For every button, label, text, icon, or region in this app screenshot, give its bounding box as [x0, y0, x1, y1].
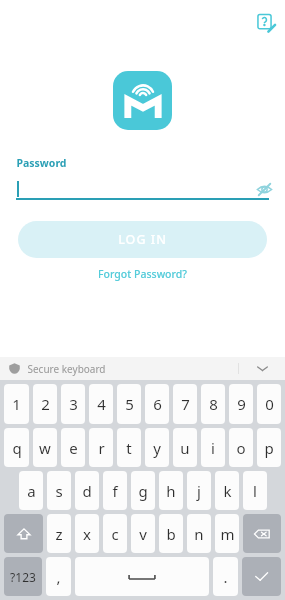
staticText: l	[253, 481, 257, 501]
staticText: LOG IN	[118, 231, 167, 248]
staticText: b	[166, 524, 176, 544]
staticText: 5	[125, 394, 134, 414]
staticText: k	[223, 481, 232, 501]
button[interactable]: .	[213, 557, 238, 596]
button[interactable]: Enter	[242, 557, 281, 596]
button[interactable]: Collapse keyboard	[239, 357, 285, 380]
button[interactable]: 0	[257, 384, 281, 424]
staticText: a	[27, 481, 36, 501]
button[interactable]: 5	[117, 384, 141, 424]
button[interactable]: Help	[253, 10, 279, 36]
staticText: t	[126, 438, 132, 458]
button[interactable]: j	[187, 471, 211, 510]
staticText: v	[139, 524, 147, 544]
button[interactable]: Secure keyboard	[0, 357, 285, 380]
button[interactable]: ,	[46, 557, 71, 596]
button[interactable]: Shift	[4, 514, 43, 553]
button[interactable]: LOG IN	[18, 221, 267, 258]
button[interactable]: t	[117, 428, 141, 467]
staticText: o	[236, 438, 246, 458]
button[interactable]: i	[201, 428, 225, 467]
staticText: 8	[209, 394, 218, 414]
button[interactable]: v	[131, 514, 155, 553]
staticText: .	[223, 567, 228, 587]
staticText: Password	[16, 156, 67, 170]
button[interactable]: 9	[229, 384, 253, 424]
staticText: 7	[181, 394, 190, 414]
button[interactable]: 8	[201, 384, 225, 424]
staticText: d	[82, 481, 92, 501]
staticText: e	[69, 438, 78, 458]
staticText: 9	[237, 394, 246, 414]
button[interactable]: x	[75, 514, 99, 553]
button[interactable]: 1	[4, 384, 29, 424]
button[interactable]: c	[103, 514, 127, 553]
button[interactable]: g	[131, 471, 155, 510]
staticText: Secure keyboard	[27, 362, 106, 376]
staticText: y	[153, 438, 161, 458]
button[interactable]: Show password	[253, 179, 275, 199]
button[interactable]: f	[103, 471, 127, 510]
button[interactable]: y	[145, 428, 169, 467]
staticText: z	[55, 524, 63, 544]
button[interactable]: q	[4, 428, 29, 467]
button[interactable]: w	[33, 428, 57, 467]
button[interactable]: k	[215, 471, 239, 510]
staticText: x	[83, 524, 91, 544]
staticText: m	[220, 524, 235, 544]
button[interactable]: 6	[145, 384, 169, 424]
staticText: 1	[12, 394, 21, 414]
staticText: p	[264, 438, 274, 458]
staticText: w	[39, 438, 51, 458]
staticText: ,	[56, 567, 61, 587]
staticText: c	[111, 524, 119, 544]
staticText: 3	[69, 394, 78, 414]
staticText: h	[166, 481, 176, 501]
button[interactable]: 3	[61, 384, 85, 424]
button[interactable]: z	[47, 514, 71, 553]
button[interactable]: b	[159, 514, 183, 553]
staticText: 2	[41, 394, 50, 414]
staticText: 0	[265, 394, 274, 414]
button[interactable]: d	[75, 471, 99, 510]
button[interactable]: l	[243, 471, 267, 510]
staticText: 6	[153, 394, 162, 414]
button[interactable]: u	[173, 428, 197, 467]
button[interactable]: Forgot Password?	[92, 264, 193, 284]
staticText: n	[194, 524, 204, 544]
staticText: i	[211, 438, 215, 458]
staticText: 4	[97, 394, 106, 414]
button[interactable]: a	[19, 471, 43, 510]
button[interactable]: n	[187, 514, 211, 553]
button[interactable]: Backspace	[243, 514, 281, 553]
button[interactable]: o	[229, 428, 253, 467]
button[interactable]: ?123	[4, 557, 42, 596]
button[interactable]: r	[89, 428, 113, 467]
button[interactable]: 2	[33, 384, 57, 424]
staticText: q	[12, 438, 22, 458]
staticText: r	[98, 438, 105, 458]
staticText: f	[112, 481, 118, 501]
staticText: j	[197, 481, 201, 501]
staticText: s	[55, 481, 63, 501]
button[interactable]: 7	[173, 384, 197, 424]
staticText: ?123	[10, 569, 36, 585]
button[interactable]: Space	[75, 557, 209, 596]
button[interactable]: e	[61, 428, 85, 467]
staticText: g	[138, 481, 148, 501]
button[interactable]: s	[47, 471, 71, 510]
staticText: Forgot Password?	[98, 267, 187, 281]
staticText: u	[180, 438, 190, 458]
button[interactable]: m	[215, 514, 239, 553]
button[interactable]: p	[257, 428, 281, 467]
button[interactable]: 4	[89, 384, 113, 424]
button[interactable]: h	[159, 471, 183, 510]
